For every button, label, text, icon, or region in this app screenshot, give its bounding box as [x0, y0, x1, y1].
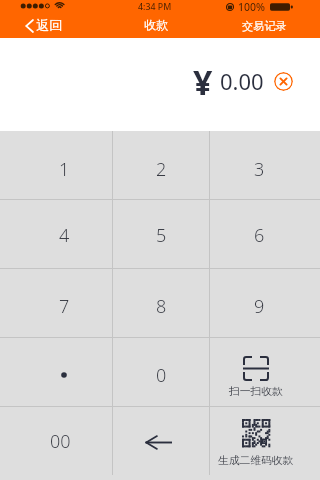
- staticText: 0.00: [220, 66, 264, 96]
- button[interactable]: Clear amount: [274, 72, 293, 91]
- button[interactable]: 3: [210, 131, 320, 199]
- button[interactable]: 8: [113, 269, 209, 337]
- staticText: 00: [50, 429, 71, 454]
- button[interactable]: 9: [210, 269, 320, 337]
- staticText: 返回: [36, 17, 63, 34]
- staticText: 3: [254, 157, 265, 182]
- staticText: 收款: [144, 17, 168, 32]
- button[interactable]: 2: [113, 131, 209, 199]
- button[interactable]: 返回: [0, 14, 73, 37]
- button[interactable]: 5: [113, 200, 209, 268]
- staticText: 8: [156, 294, 167, 319]
- button[interactable]: 交易记录: [232, 16, 320, 36]
- staticText: 0: [156, 363, 167, 388]
- button[interactable]: 扫一扫收款: [210, 338, 320, 406]
- staticText: 100%: [238, 0, 265, 13]
- button[interactable]: 0: [113, 338, 209, 406]
- staticText: 6: [254, 223, 265, 248]
- staticText: 9: [254, 294, 265, 319]
- staticText: 生成二维码收款: [218, 454, 294, 468]
- staticText: 4:34 PM: [138, 1, 172, 13]
- staticText: 5: [156, 223, 167, 248]
- button[interactable]: 生成二维码收款: [210, 407, 320, 475]
- staticText: 扫一扫收款: [229, 385, 283, 399]
- button[interactable]: Decimal point: [0, 338, 112, 406]
- button[interactable]: 4: [0, 200, 112, 268]
- staticText: 4: [59, 223, 70, 248]
- button[interactable]: Backspace: [113, 407, 209, 475]
- staticText: 1: [59, 157, 70, 182]
- button[interactable]: 7: [0, 269, 112, 337]
- staticText: 7: [59, 294, 70, 319]
- button[interactable]: 6: [210, 200, 320, 268]
- button[interactable]: 1: [0, 131, 112, 199]
- staticText: 2: [156, 157, 167, 182]
- button[interactable]: 00: [0, 407, 112, 475]
- staticText: ¥: [193, 59, 213, 105]
